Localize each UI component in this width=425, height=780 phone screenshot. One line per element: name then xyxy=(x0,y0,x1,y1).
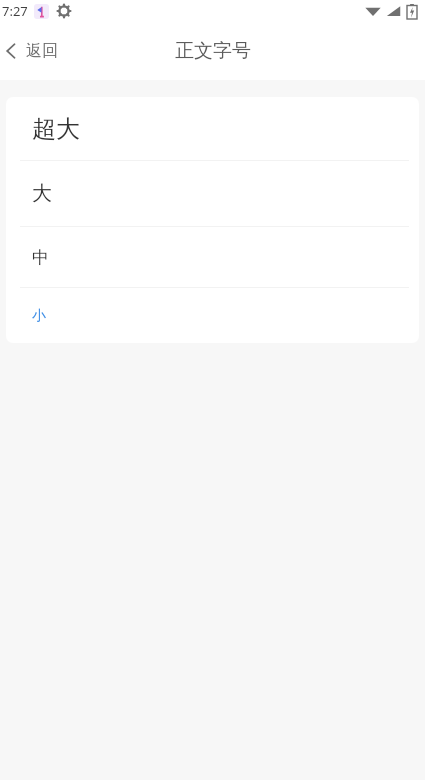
staticText: 小 xyxy=(32,307,46,325)
staticText: 返回 xyxy=(26,41,58,61)
button[interactable]: 小 xyxy=(6,288,419,343)
staticText: 超大 xyxy=(32,114,80,144)
button[interactable]: 中 xyxy=(6,227,419,287)
other: Back xyxy=(5,41,17,61)
staticText: 中 xyxy=(32,247,49,268)
button[interactable]: Back xyxy=(0,35,68,67)
other: Settings xyxy=(57,4,71,18)
staticText: 正文字号 xyxy=(175,39,251,63)
button[interactable]: 大 xyxy=(6,161,419,226)
staticText: 大 xyxy=(32,181,52,206)
button[interactable]: 超大 xyxy=(6,97,419,160)
staticText: 7:27 xyxy=(2,2,28,20)
